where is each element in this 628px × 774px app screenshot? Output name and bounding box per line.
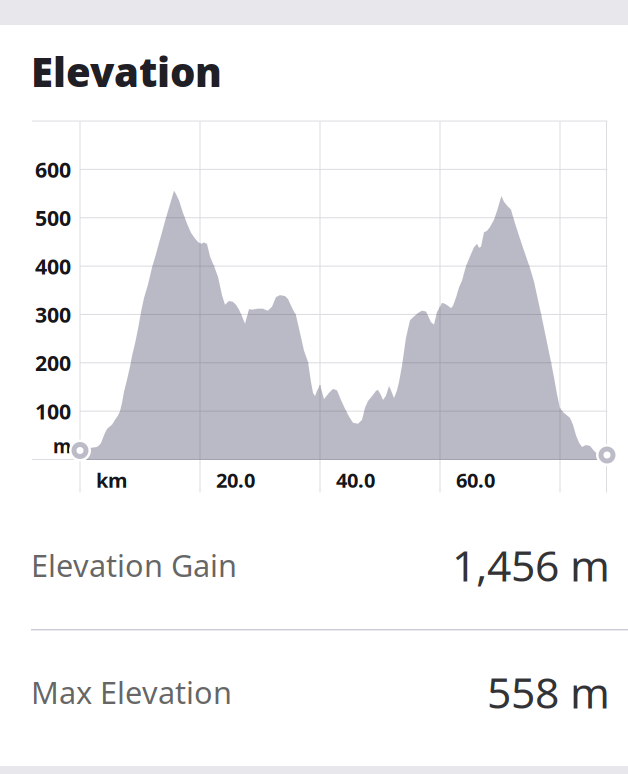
staticText: km [96,467,128,493]
staticText: m [53,434,71,458]
staticText: Max Elevation [31,672,232,712]
staticText: Elevation [31,45,222,98]
staticText: 300 [35,300,71,329]
button[interactable]: Elevation Gain [0,533,628,597]
staticText: 500 [35,204,71,232]
staticText: 60.0 [456,467,495,493]
staticText: 558 m [487,664,610,720]
button[interactable]: Max Elevation [0,660,628,724]
staticText: 20.0 [216,467,255,493]
staticText: 600 [35,155,71,183]
staticText: 400 [35,252,71,280]
staticText: 1,456 m [452,537,610,593]
staticText: Elevation Gain [31,545,237,585]
staticText: 100 [35,397,71,425]
staticText: 200 [35,349,71,377]
staticText: 40.0 [336,467,375,493]
